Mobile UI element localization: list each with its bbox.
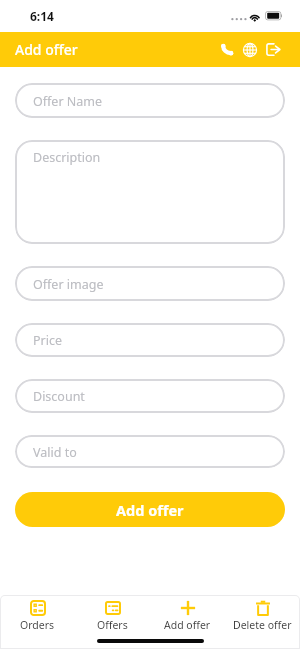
button[interactable]: Valid to xyxy=(15,435,285,468)
button[interactable]: Delete offer xyxy=(225,600,300,632)
button[interactable]: Offer Name xyxy=(15,83,285,118)
button[interactable]: Price xyxy=(15,323,285,357)
button[interactable]: Add offer xyxy=(15,492,285,527)
button[interactable]: Offer image xyxy=(15,266,285,301)
button[interactable]: Discount xyxy=(15,379,285,413)
staticText: Offers xyxy=(97,618,128,632)
staticText: Add offer xyxy=(15,40,78,59)
staticText: Add offer xyxy=(116,500,184,520)
staticText: Valid to xyxy=(33,444,77,461)
button[interactable]: Log out xyxy=(261,32,285,67)
button[interactable]: Offers xyxy=(75,600,150,632)
staticText: 6:14 xyxy=(30,8,54,24)
staticText: Orders xyxy=(20,618,55,632)
staticText: Delete offer xyxy=(233,618,292,632)
button[interactable]: Add offer xyxy=(150,600,225,632)
button[interactable]: Description xyxy=(15,140,285,244)
button[interactable]: Call xyxy=(215,32,239,67)
staticText: Offer Name xyxy=(33,93,103,110)
staticText: Price xyxy=(33,332,63,349)
staticText: Discount xyxy=(33,388,85,405)
staticText: Offer image xyxy=(33,276,104,293)
staticText: Add offer xyxy=(164,618,211,632)
staticText: Description xyxy=(33,149,101,166)
button[interactable]: Orders xyxy=(0,600,75,632)
button[interactable]: Change language xyxy=(238,32,262,67)
